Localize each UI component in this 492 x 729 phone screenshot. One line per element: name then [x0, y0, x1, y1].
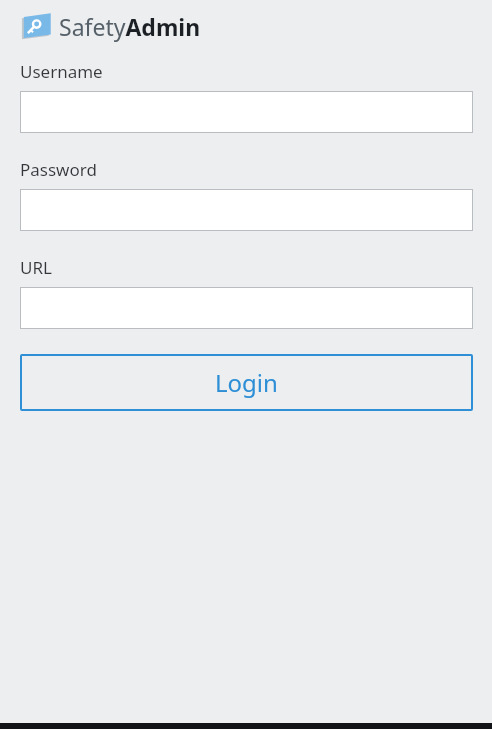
staticText: Login	[215, 366, 278, 399]
staticText: URL	[20, 256, 52, 279]
button[interactable]	[20, 91, 473, 133]
staticText: SafetyAdmin	[59, 11, 201, 42]
staticText: Username	[20, 60, 103, 83]
button[interactable]: Login	[20, 354, 473, 411]
button[interactable]	[20, 189, 473, 231]
button[interactable]	[20, 287, 473, 329]
other: SafetyAdmin logo	[20, 10, 52, 42]
staticText: Password	[20, 158, 97, 181]
